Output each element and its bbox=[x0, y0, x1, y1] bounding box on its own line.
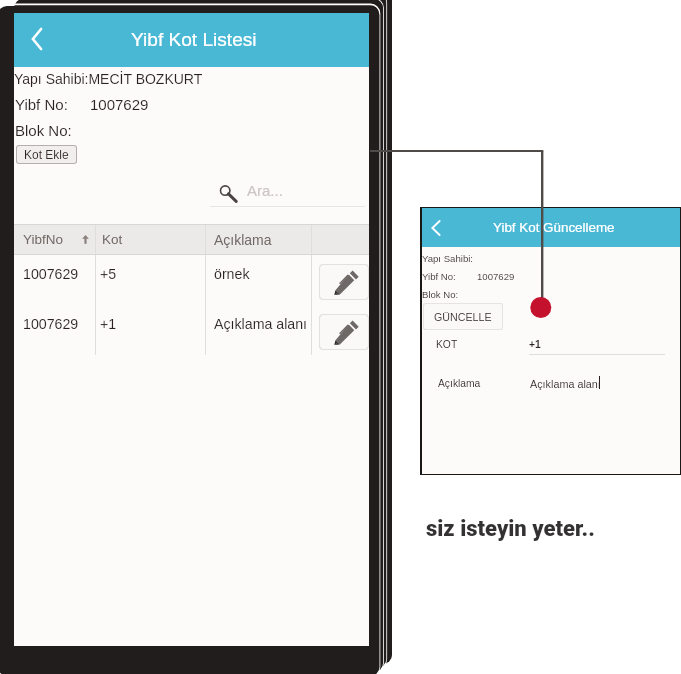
staticText: Blok No: bbox=[422, 289, 459, 300]
staticText: Açıklama alanı bbox=[530, 378, 601, 390]
staticText: Yapı Sahibi:MECİT BOZKURT bbox=[14, 71, 203, 87]
button[interactable]: Back bbox=[426, 218, 446, 238]
staticText: 1007629 bbox=[23, 266, 79, 282]
staticText: +1 bbox=[529, 339, 541, 351]
staticText: GÜNCELLE bbox=[434, 311, 492, 323]
staticText: Açıklama alanı bbox=[214, 316, 308, 332]
button[interactable]: 1007629 bbox=[14, 255, 369, 305]
staticText: 1007629 bbox=[477, 271, 515, 282]
button[interactable]: Back bbox=[23, 25, 51, 53]
staticText: 1007629 bbox=[23, 316, 79, 332]
staticText: Kot Ekle bbox=[24, 148, 69, 161]
staticText: Yibf No: bbox=[15, 96, 68, 113]
button[interactable]: Edit bbox=[320, 315, 368, 349]
button[interactable]: Back bbox=[14, 13, 369, 67]
staticText: Açıklama bbox=[438, 378, 481, 390]
staticText: Kot bbox=[102, 232, 123, 247]
staticText: Yibf Kot Güncelleme bbox=[493, 220, 615, 235]
staticText: YibfNo bbox=[23, 232, 64, 247]
staticText: örnek bbox=[214, 266, 250, 282]
staticText: +5 bbox=[100, 266, 117, 282]
staticText: Yibf Kot Listesi bbox=[131, 29, 257, 50]
staticText: KOT bbox=[436, 339, 458, 351]
staticText: Açıklama bbox=[214, 232, 272, 248]
staticText: Yibf No: bbox=[422, 271, 456, 282]
button[interactable]: Edit bbox=[320, 265, 368, 299]
staticText: Ara... bbox=[247, 182, 283, 199]
button[interactable]: Ara... bbox=[210, 178, 365, 207]
button[interactable]: Kot Ekle bbox=[17, 146, 76, 163]
button[interactable]: Back bbox=[422, 208, 680, 247]
staticText: Blok No: bbox=[15, 122, 72, 139]
button[interactable]: GÜNCELLE bbox=[424, 304, 502, 329]
staticText: +1 bbox=[100, 316, 117, 332]
staticText: Yapı Sahibi: bbox=[422, 253, 474, 264]
staticText: 1007629 bbox=[90, 96, 149, 113]
button[interactable]: 1007629 bbox=[14, 305, 369, 355]
button[interactable]: siz isteyin yeter.. bbox=[426, 516, 595, 542]
